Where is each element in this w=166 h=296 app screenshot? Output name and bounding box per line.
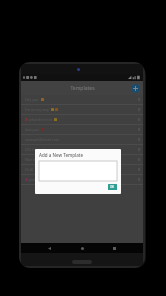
staticText: Hey you — [25, 97, 40, 102]
staticText: love you — [25, 127, 40, 132]
button[interactable]: what the heck — [21, 115, 143, 124]
button[interactable]: love you — [21, 125, 143, 134]
staticText: what the heck — [29, 117, 53, 122]
button[interactable]: Back — [45, 244, 54, 253]
button[interactable]: Home — [78, 244, 87, 253]
staticText: I'm on my way — [25, 107, 50, 112]
staticText: Add a New Template — [39, 152, 84, 158]
button[interactable]: Add template — [131, 84, 140, 93]
button[interactable]: Recent apps — [110, 244, 119, 253]
button[interactable]: Hey you — [21, 95, 143, 104]
button[interactable]: LOL this is fun — [21, 145, 143, 154]
staticText: LOL this is fun — [25, 147, 49, 152]
button[interactable] — [39, 161, 117, 181]
staticText: Nice features here — [25, 157, 56, 162]
staticText: just a test — [29, 177, 45, 182]
staticText: example@email.com — [25, 137, 60, 142]
button[interactable]: Save — [108, 184, 117, 190]
button[interactable]: just a test — [21, 175, 143, 184]
button[interactable]: Nice features here — [21, 155, 143, 164]
staticText: Hi all — [25, 167, 34, 172]
staticText: OK — [110, 185, 115, 189]
button[interactable]: Hi all — [21, 165, 143, 174]
button[interactable]: I'm on my way — [21, 105, 143, 114]
staticText: Templates — [70, 85, 95, 92]
